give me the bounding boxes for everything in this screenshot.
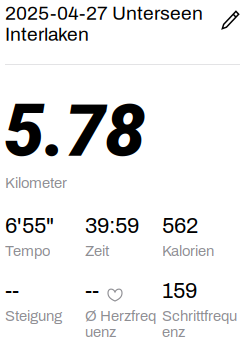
staticText: Kalorien [162, 243, 214, 259]
staticText: Schrittfrequ enz [162, 308, 237, 340]
staticText: 6'55" [5, 214, 54, 237]
staticText: Zeit [85, 243, 109, 259]
staticText: -- [5, 279, 19, 302]
staticText: 39:59 [85, 214, 139, 237]
button[interactable]: Bearbeiten [217, 6, 243, 34]
staticText: -- [85, 279, 99, 302]
staticText: 2025-04-27 Unterseen Interlaken [5, 3, 203, 45]
staticText: Steigung [5, 308, 62, 324]
staticText: 5.78 [4, 89, 145, 173]
staticText: 562 [162, 214, 198, 237]
staticText: 159 [162, 279, 197, 302]
staticText: Tempo [5, 243, 50, 259]
staticText: Kilometer [5, 175, 67, 191]
staticText: Ø Herzfreq uenz [85, 308, 156, 340]
